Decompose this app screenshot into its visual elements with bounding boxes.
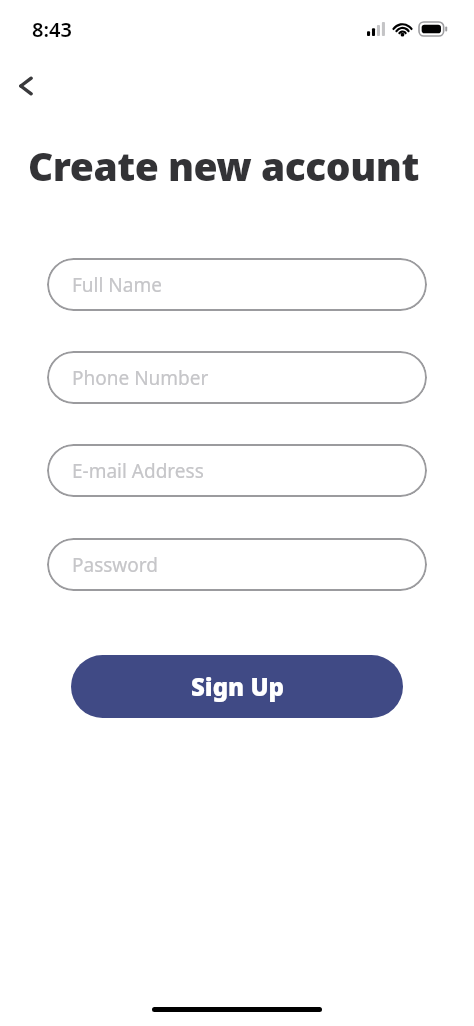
button[interactable]: Password xyxy=(47,538,427,591)
button[interactable]: Phone Number xyxy=(47,351,427,404)
button[interactable]: Sign Up xyxy=(71,655,403,718)
staticText: 8:43 xyxy=(32,16,72,43)
staticText: Full Name xyxy=(72,272,162,298)
staticText: Create new account xyxy=(28,139,419,192)
staticText: E-mail Address xyxy=(72,458,204,484)
staticText: Password xyxy=(72,552,158,578)
button[interactable]: Full Name xyxy=(47,258,427,311)
staticText: Phone Number xyxy=(72,365,209,391)
button[interactable]: Back xyxy=(2,62,50,110)
staticText: Sign Up xyxy=(191,670,284,703)
button[interactable]: E-mail Address xyxy=(47,444,427,497)
